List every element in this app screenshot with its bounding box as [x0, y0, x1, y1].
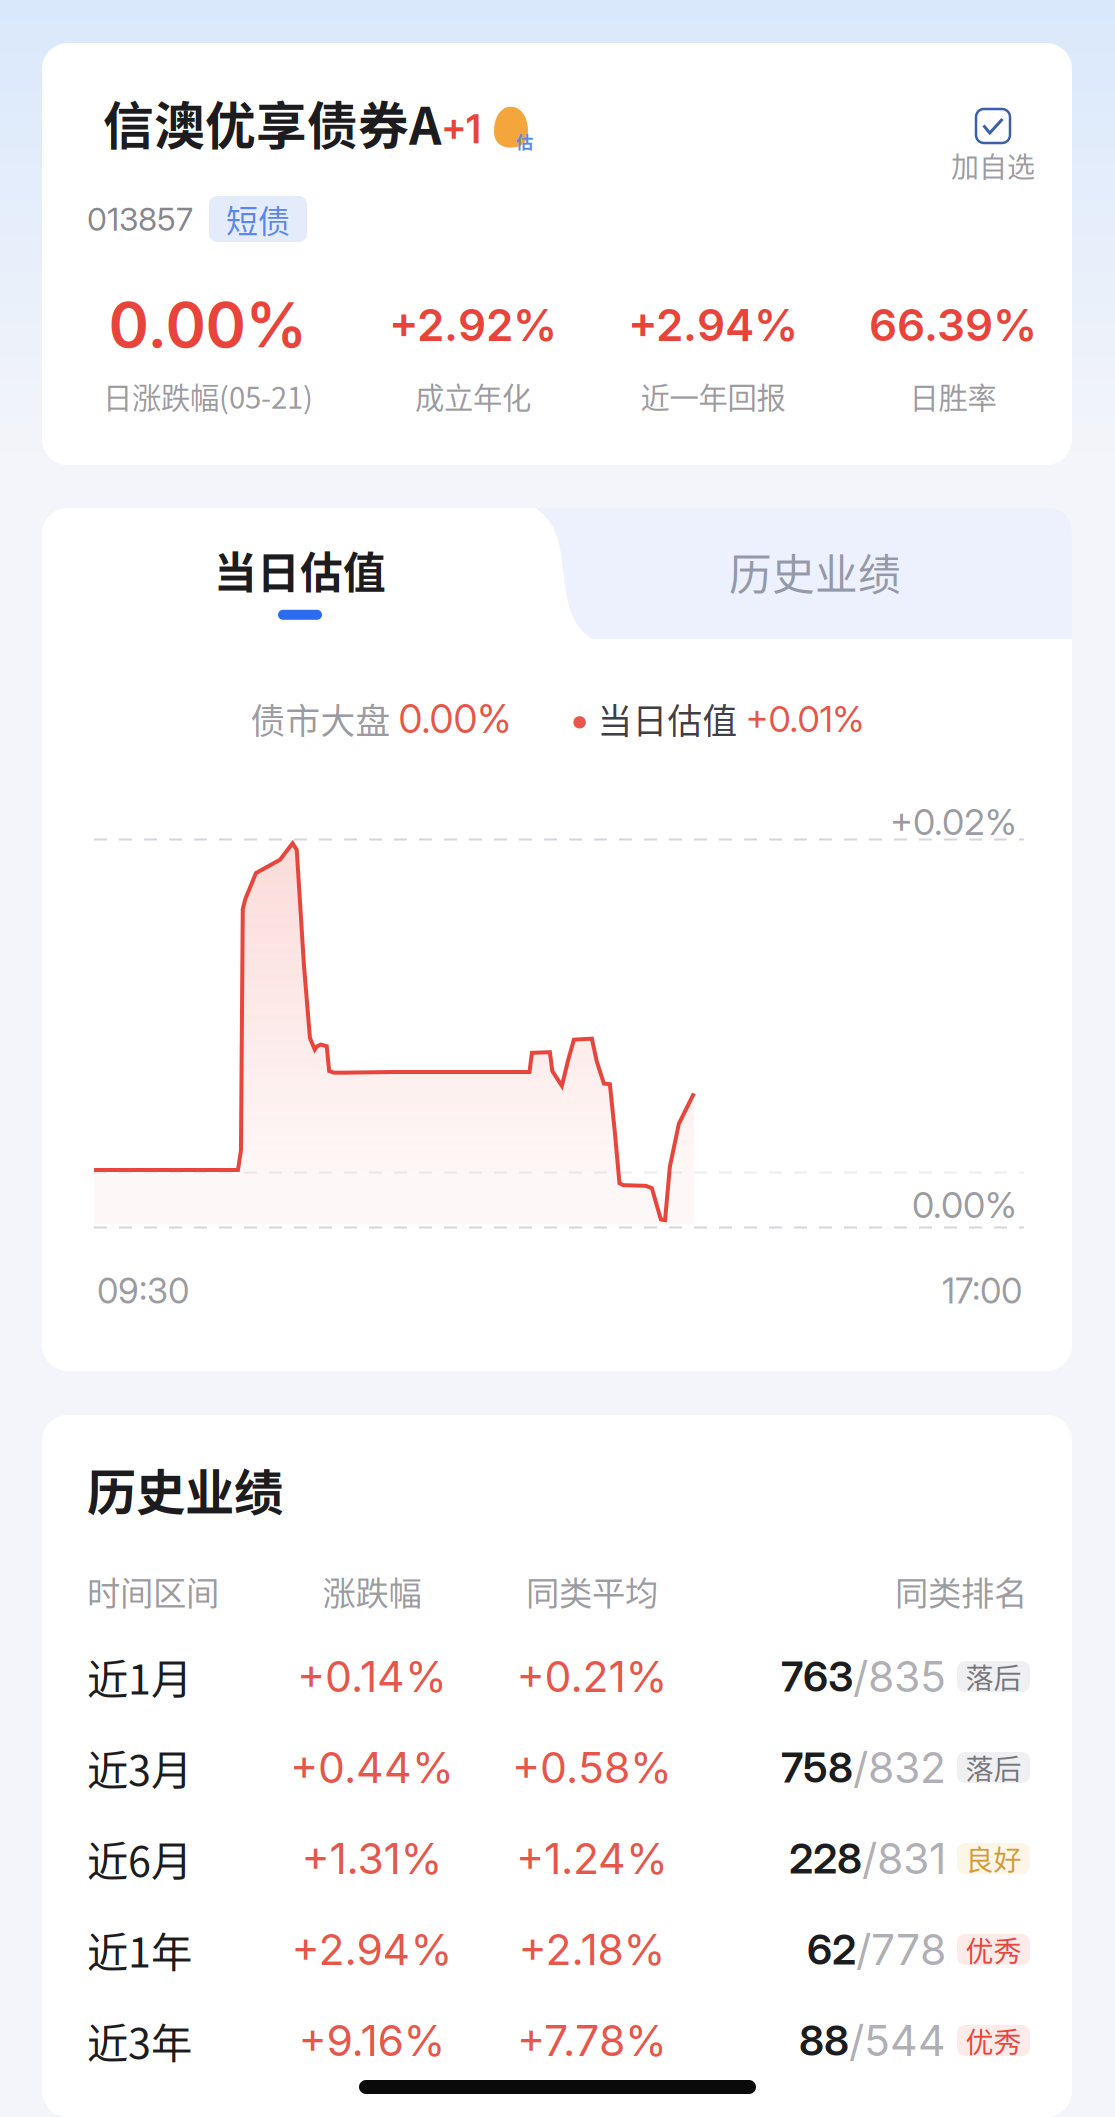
staticText: 0.00% [912, 1183, 1017, 1227]
staticText: +7.78% [517, 2015, 667, 2066]
staticText: 17:00 [942, 1270, 1022, 1312]
staticText: 短债 [226, 196, 290, 242]
staticText: 228 [789, 1833, 862, 1883]
staticText: 优秀 [965, 1929, 1021, 1970]
staticText: 近1年 [87, 1920, 192, 1979]
staticText: +1.24% [516, 1833, 668, 1884]
staticText: /832 [853, 1742, 946, 1793]
staticText: +1.31% [301, 1833, 442, 1884]
staticText: 落后 [965, 1747, 1021, 1788]
staticText: 同类排名 [895, 1567, 1027, 1615]
staticText: 历史业绩 [87, 1453, 283, 1525]
staticText: 日胜率 [909, 375, 996, 417]
staticText: 同类平均 [526, 1567, 658, 1615]
staticText: 当日估值 [589, 694, 745, 744]
staticText: +0.02% [890, 800, 1017, 844]
staticText: 落后 [965, 1656, 1021, 1697]
staticText: 近3月 [87, 1738, 192, 1797]
staticText: 日涨跌幅(05-21) [103, 375, 313, 417]
staticText: +2.94% [628, 298, 798, 352]
button[interactable]: 当日估值 [42, 508, 558, 639]
staticText: +2.92% [389, 298, 557, 352]
staticText: • [569, 695, 589, 743]
staticText: 近1月 [87, 1647, 192, 1706]
staticText: /835 [853, 1651, 946, 1702]
staticText: 时间区间 [87, 1567, 219, 1615]
staticText: 66.39% [869, 298, 1037, 352]
staticText: +0.21% [516, 1651, 667, 1702]
staticText: +0.14% [297, 1651, 447, 1702]
staticText: 加自选 [951, 145, 1035, 185]
staticText: +0.44% [290, 1742, 454, 1793]
button[interactable]: 加自选 [923, 107, 1063, 185]
staticText: 013857 [87, 200, 193, 238]
staticText: 88 [799, 2015, 849, 2065]
staticText: +2.94% [291, 1924, 452, 1975]
staticText: 良好 [965, 1838, 1021, 1879]
staticText: 优秀 [965, 2020, 1021, 2061]
button[interactable]: 历史业绩 [558, 508, 1072, 639]
staticText: 62 [807, 1924, 856, 1974]
staticText: 763 [781, 1651, 853, 1701]
staticText: 0.00% [108, 288, 307, 362]
staticText: 09:30 [97, 1270, 189, 1312]
staticText: 当日估值 [214, 539, 386, 601]
staticText: 估 [516, 129, 533, 154]
staticText: +2.18% [518, 1924, 665, 1975]
staticText: +9.16% [298, 2015, 445, 2066]
staticText: 涨跌幅 [322, 1567, 421, 1615]
staticText: /778 [856, 1924, 946, 1975]
staticText: /544 [849, 2015, 946, 2066]
staticText: 0.00% [398, 696, 511, 742]
staticText: 近一年回报 [640, 375, 785, 417]
staticText: /831 [862, 1833, 946, 1884]
staticText: 近6月 [87, 1829, 192, 1888]
staticText: 信澳优享债券A [103, 86, 441, 159]
staticText: 成立年化 [415, 375, 531, 417]
staticText: 近3年 [87, 2011, 192, 2070]
staticText: +0.01% [745, 697, 864, 741]
staticText: 758 [781, 1742, 853, 1792]
staticText: 历史业绩 [729, 541, 901, 603]
staticText: +1 [441, 106, 481, 153]
staticText: +0.58% [512, 1742, 672, 1793]
staticText: 债市大盘 [250, 694, 398, 744]
